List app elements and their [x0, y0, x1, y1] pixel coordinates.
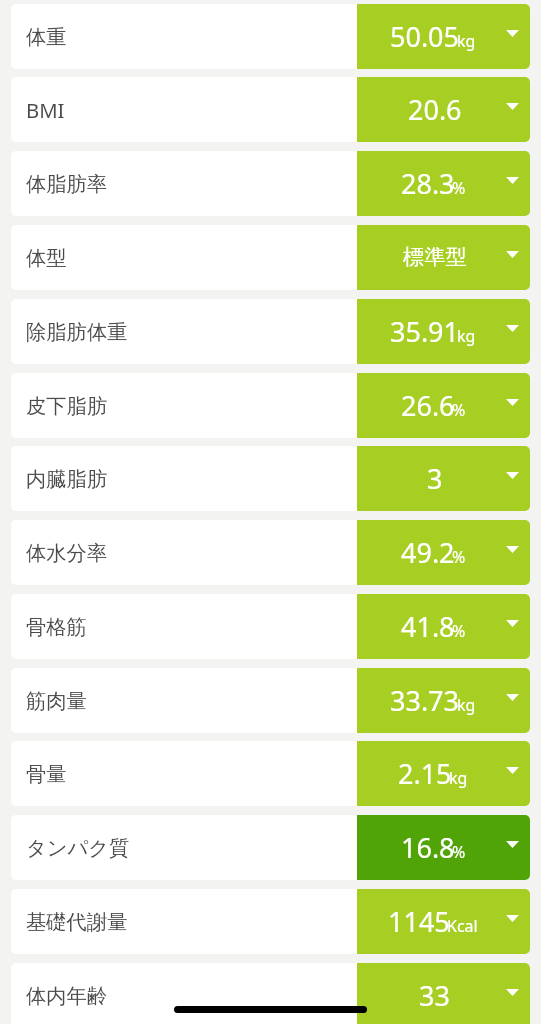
staticText: kg [457, 30, 476, 52]
button[interactable]: 体水分率 [11, 520, 530, 585]
staticText: % [452, 620, 466, 642]
button[interactable]: タンパク質 [11, 815, 530, 880]
button[interactable]: タンパク質 16.8% [357, 815, 530, 880]
button[interactable]: 除脂肪体重 [11, 299, 530, 364]
staticText: 除脂肪体重 [26, 319, 128, 345]
staticText: 33.73 [390, 682, 460, 719]
staticText: 3 [427, 460, 443, 497]
button[interactable]: 体重 50.05kg [357, 4, 530, 69]
button[interactable]: 基礎代謝量 1145Kcal [357, 889, 530, 954]
staticText: 28.3 [401, 165, 455, 202]
staticText: 50.05 [390, 18, 460, 55]
button[interactable]: 骨量 [11, 741, 530, 806]
staticText: 筋肉量 [26, 688, 87, 714]
staticText: BMI [26, 96, 65, 124]
button[interactable]: 皮下脂肪 [11, 373, 530, 438]
staticText: 26.6 [401, 387, 455, 424]
staticText: % [452, 399, 466, 421]
button[interactable]: 体型 標準型 [357, 225, 530, 290]
button[interactable]: 骨格筋 41.8% [357, 594, 530, 659]
staticText: % [452, 546, 466, 568]
button[interactable]: BMI [11, 77, 530, 142]
staticText: 33 [419, 977, 450, 1014]
staticText: kg [449, 767, 468, 789]
button[interactable]: 内臓脂肪 [11, 446, 530, 511]
button[interactable]: 筋肉量 33.73kg [357, 668, 530, 733]
staticText: kg [457, 694, 476, 716]
staticText: 骨格筋 [26, 614, 87, 640]
button[interactable]: 骨格筋 [11, 594, 530, 659]
staticText: 体型 [26, 245, 67, 271]
staticText: 体内年齢 [26, 983, 108, 1009]
button[interactable]: 体内年齢 33 [357, 963, 530, 1024]
staticText: 1145 [388, 903, 450, 940]
staticText: kg [457, 325, 476, 347]
staticText: 体重 [26, 24, 67, 50]
staticText: 体脂肪率 [26, 171, 108, 197]
staticText: 内臓脂肪 [26, 466, 108, 492]
button[interactable]: BMI 20.6 [357, 77, 530, 142]
staticText: Kcal [447, 915, 478, 937]
staticText: 標準型 [403, 244, 467, 271]
staticText: 骨量 [26, 761, 67, 787]
staticText: % [452, 841, 466, 863]
button[interactable]: 除脂肪体重 35.91kg [357, 299, 530, 364]
staticText: 2.15 [398, 755, 452, 792]
button[interactable]: 皮下脂肪 26.6% [357, 373, 530, 438]
staticText: 41.8 [401, 608, 455, 645]
button[interactable]: 体脂肪率 [11, 151, 530, 216]
staticText: 20.6 [408, 91, 462, 128]
button[interactable]: 体型 [11, 225, 530, 290]
staticText: 35.91 [390, 313, 460, 350]
button[interactable]: 体内年齢 [11, 963, 530, 1024]
button[interactable]: 体脂肪率 28.3% [357, 151, 530, 216]
button[interactable]: 内臓脂肪 3 [357, 446, 530, 511]
staticText: % [452, 177, 466, 199]
staticText: 49.2 [401, 534, 455, 571]
button[interactable]: 体重 [11, 4, 530, 69]
staticText: 皮下脂肪 [26, 393, 108, 419]
staticText: タンパク質 [26, 835, 130, 861]
button[interactable]: 基礎代謝量 [11, 889, 530, 954]
staticText: 16.8 [401, 829, 455, 866]
button[interactable]: 体水分率 49.2% [357, 520, 530, 585]
staticText: 基礎代謝量 [26, 909, 128, 935]
staticText: 体水分率 [26, 540, 108, 566]
button[interactable]: 筋肉量 [11, 668, 530, 733]
button[interactable]: 骨量 2.15kg [357, 741, 530, 806]
